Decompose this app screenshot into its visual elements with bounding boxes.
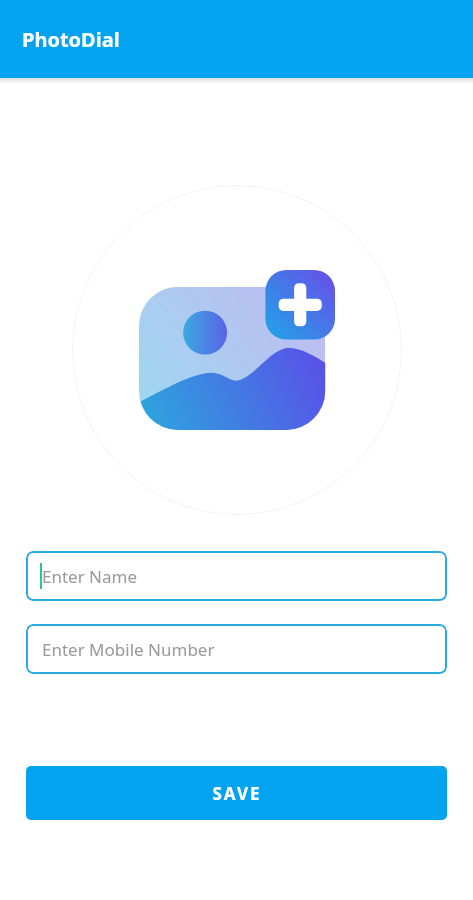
button[interactable]: Add photo bbox=[72, 185, 402, 515]
staticText: Enter Mobile Number bbox=[42, 638, 215, 661]
staticText: SAVE bbox=[212, 782, 262, 805]
button[interactable]: SAVE bbox=[26, 766, 447, 820]
staticText: Enter Name bbox=[42, 565, 138, 588]
button[interactable]: Enter Mobile Number bbox=[26, 624, 447, 674]
staticText: PhotoDial bbox=[22, 26, 120, 53]
button[interactable]: Enter Name bbox=[26, 551, 447, 601]
